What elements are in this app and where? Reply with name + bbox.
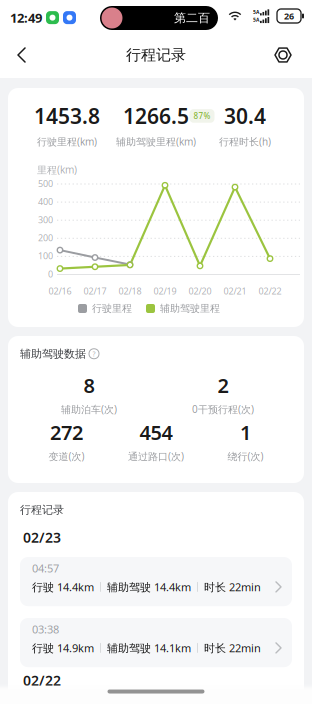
staticText: 行程记录 [20, 503, 64, 516]
staticText: 辅助驾驶数据 [20, 347, 86, 360]
staticText: 行驶里程 [92, 302, 132, 315]
staticText: 26 [284, 10, 294, 22]
staticText: 1266.5 [123, 102, 189, 130]
staticText: 里程(km) [37, 163, 77, 176]
button[interactable]: Back [0, 47, 28, 63]
staticText: ? [92, 349, 95, 358]
staticText: 辅助驾驶 14.4km [107, 580, 191, 594]
staticText: 时长 22min [204, 580, 261, 594]
button[interactable]: 03:38 [20, 618, 292, 667]
staticText: 辅助驾驶里程 [160, 302, 220, 315]
button[interactable]: Settings [274, 46, 312, 64]
staticText: 2 [217, 372, 228, 399]
staticText: 454 [139, 419, 172, 446]
staticText: 87% [193, 111, 210, 121]
staticText: 第二百 [174, 11, 210, 25]
staticText: 辅助泊车(次) [61, 403, 117, 416]
staticText: 行驶 14.4km [32, 580, 94, 594]
staticText: 通过路口(次) [128, 450, 184, 463]
staticText: 30.4 [224, 102, 266, 130]
staticText: 8 [83, 372, 94, 399]
staticText: 时长 22min [204, 641, 261, 655]
staticText: 02/22 [258, 285, 281, 297]
staticText: 0 [48, 268, 53, 280]
staticText: 1 [240, 419, 251, 446]
staticText: 02/22 [23, 671, 61, 690]
staticText: 行驶 14.9km [32, 641, 94, 655]
staticText: 04:57 [32, 561, 59, 576]
staticText: 272 [50, 419, 83, 446]
staticText: 100 [38, 250, 53, 262]
staticText: 03:38 [32, 622, 59, 637]
staticText: 绕行(次) [227, 450, 263, 463]
staticText: 12:49 [10, 9, 42, 26]
staticText: 02/17 [83, 285, 106, 297]
staticText: 02/20 [188, 285, 211, 297]
staticText: 02/16 [48, 285, 71, 297]
staticText: 02/18 [118, 285, 141, 297]
staticText: 02/19 [153, 285, 176, 297]
staticText: 辅助驾驶 14.1km [107, 641, 191, 655]
button[interactable]: Info [89, 349, 99, 359]
staticText: 500 [38, 177, 53, 189]
staticText: 400 [38, 196, 53, 208]
staticText: 辅助驾驶里程(km) [116, 135, 196, 148]
staticText: 行程记录 [126, 46, 186, 64]
staticText: 5A [253, 16, 259, 23]
staticText: 变道(次) [48, 450, 84, 463]
staticText: 行驶里程(km) [37, 135, 97, 148]
staticText: 300 [38, 214, 53, 226]
staticText: 02/23 [23, 528, 61, 547]
staticText: 200 [38, 232, 53, 244]
staticText: 02/21 [223, 285, 246, 297]
staticText: 1453.8 [34, 102, 100, 130]
button[interactable]: 04:57 [20, 557, 292, 606]
staticText: 0干预行程(次) [192, 403, 254, 416]
staticText: 行程时长(h) [219, 135, 271, 148]
staticText: 5A [253, 9, 259, 15]
